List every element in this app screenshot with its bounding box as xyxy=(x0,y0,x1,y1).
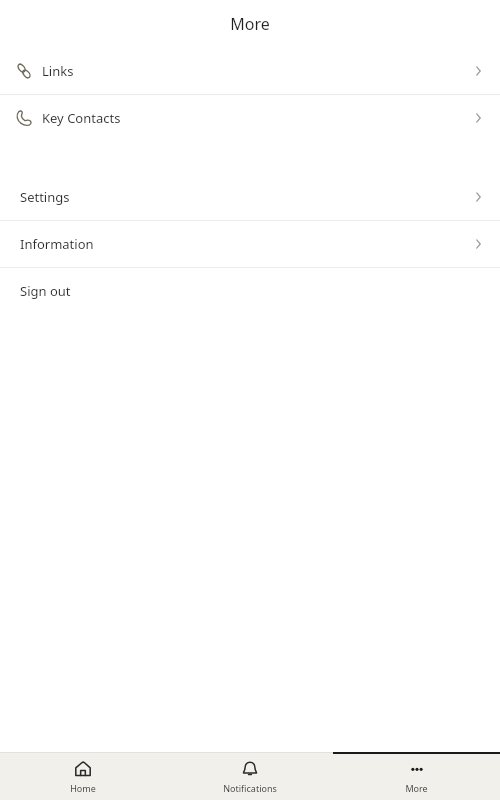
staticText: More xyxy=(230,13,270,35)
staticText: Sign out xyxy=(20,282,71,300)
button[interactable]: Links xyxy=(0,48,500,94)
button[interactable]: Information xyxy=(0,221,500,267)
staticText: More xyxy=(405,782,428,794)
button[interactable]: Home xyxy=(0,752,166,800)
button[interactable]: More xyxy=(333,752,500,800)
button[interactable]: Settings xyxy=(0,174,500,220)
button[interactable]: Sign out xyxy=(0,268,500,314)
button[interactable]: Key Contacts xyxy=(0,95,500,141)
staticText: Information xyxy=(20,235,94,253)
staticText: Settings xyxy=(20,188,70,206)
staticText: Links xyxy=(42,62,74,80)
button[interactable]: Notifications xyxy=(166,752,333,800)
staticText: Key Contacts xyxy=(42,109,121,127)
staticText: Home xyxy=(70,782,96,794)
staticText: Notifications xyxy=(223,782,277,794)
